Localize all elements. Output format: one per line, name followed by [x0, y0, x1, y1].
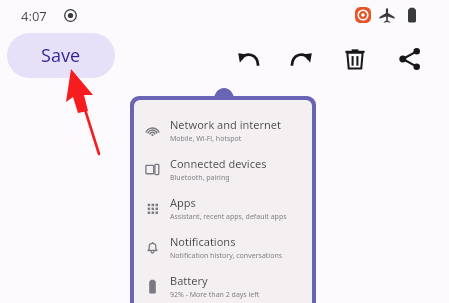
staticText: 4:07 [21, 7, 47, 25]
button[interactable]: Undo [233, 43, 264, 74]
button[interactable]: Save [7, 33, 115, 78]
staticText: Bluetooth, pairing [170, 173, 230, 183]
button[interactable]: Network and internet [134, 111, 312, 150]
staticText: Assistant, recent apps, default apps [170, 212, 287, 222]
staticText: Battery [170, 273, 208, 288]
staticText: Notification history, conversations [170, 251, 283, 261]
staticText: Save [41, 43, 81, 68]
button[interactable]: Redo [285, 43, 316, 74]
button[interactable]: Share [394, 43, 425, 74]
button[interactable]: Delete [339, 43, 370, 74]
staticText: Notifications [170, 234, 236, 249]
staticText: Connected devices [170, 156, 267, 171]
button[interactable]: Battery [134, 267, 312, 303]
button[interactable]: Connected devices [134, 150, 312, 189]
staticText: Apps [170, 195, 196, 210]
button[interactable]: Notifications [134, 228, 312, 267]
staticText: 92% - More than 2 days left [170, 290, 260, 300]
staticText: Network and internet [170, 117, 282, 132]
button[interactable]: Apps [134, 189, 312, 228]
staticText: Mobile, Wi-Fi, hotspot [170, 134, 242, 144]
